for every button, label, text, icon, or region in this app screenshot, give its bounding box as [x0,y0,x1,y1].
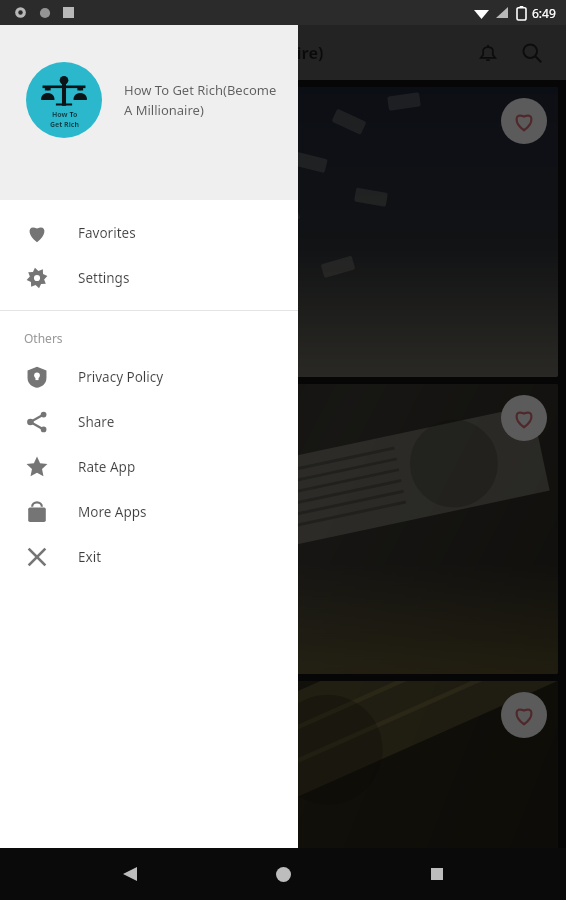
button[interactable]: Favorite [501,692,547,738]
button[interactable]: Favorite [501,395,547,441]
staticText: How To Get Rich(Become A Millionaire) [124,81,284,119]
button[interactable]: Rate App [0,444,298,489]
button[interactable]: How To Grow Economy [8,87,558,377]
staticText: Get Rich [50,120,79,130]
button[interactable]: Notifications [466,31,510,75]
button[interactable]: Share [0,399,298,444]
staticText: Settings [78,269,130,287]
staticText: How To [52,110,78,120]
button[interactable]: Search [510,31,554,75]
button[interactable]: Favorites [0,210,298,255]
button[interactable]: Settings [0,255,298,300]
button[interactable]: Back [106,850,154,898]
button[interactable]: Privacy Policy [0,354,298,399]
staticText: How To Solve Business Problems [22,516,264,536]
button[interactable]: Exit [0,534,298,579]
staticText: Others [24,330,63,346]
staticText: Privacy Policy [78,368,164,386]
button[interactable]: How To Solve Business Problems [8,384,558,674]
staticText: How To Get Rich(Become A Millionaire) [16,42,324,64]
staticText: Favorites [78,224,136,242]
button[interactable]: Home [259,850,307,898]
staticText: How To Grow Economy [22,219,192,239]
button[interactable]: Favorite [501,98,547,144]
button[interactable]: Recents [413,850,461,898]
staticText: 6:49 [532,5,556,21]
staticText: Rate App [78,458,136,476]
button[interactable]: More Apps [0,489,298,534]
staticText: Share [78,413,115,431]
button[interactable]: How To Buy a Home [8,681,558,900]
staticText: More Apps [78,503,147,521]
staticText: Exit [78,548,102,566]
